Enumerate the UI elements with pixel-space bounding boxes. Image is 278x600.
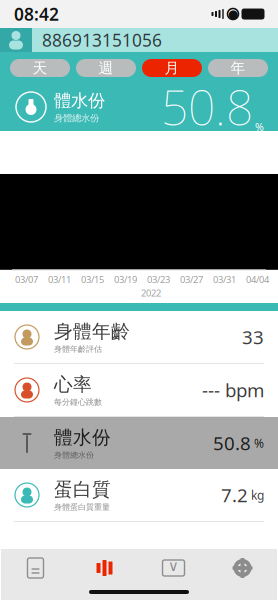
staticText: 03/07 [15, 273, 38, 286]
staticText: 體水份 [54, 90, 105, 111]
staticText: 03/23 [147, 273, 170, 286]
staticText: 04/04 [246, 273, 269, 286]
staticText: 身體總水份 [54, 112, 99, 124]
staticText: 03/19 [114, 273, 137, 286]
button[interactable]: 蛋白質 [0, 469, 278, 522]
button[interactable]: 月 [142, 59, 202, 77]
staticText: 身體年齡評估 [54, 344, 102, 354]
staticText: % [254, 435, 264, 451]
button[interactable]: Records [1, 549, 70, 587]
staticText: 03/27 [180, 273, 203, 286]
button[interactable]: Charts [70, 549, 139, 587]
button[interactable]: 年 [208, 59, 268, 77]
button[interactable]: 天 [10, 59, 70, 77]
staticText: 週 [98, 59, 113, 77]
button[interactable]: 身體年齡 [0, 311, 278, 364]
staticText: 年 [230, 59, 245, 77]
staticText: 7.2 [221, 483, 248, 507]
staticText: 08:42 [14, 2, 59, 25]
button[interactable]: 心率 [0, 364, 278, 417]
staticText: 33 [242, 325, 264, 349]
staticText: 每分鐘心跳數 [54, 397, 102, 407]
button[interactable]: 體水份 [0, 417, 278, 469]
staticText: 2022 [141, 287, 161, 299]
button[interactable]: Messages [139, 549, 208, 587]
staticText: 886913151056 [42, 28, 162, 51]
staticText: 體水份 [54, 426, 111, 449]
staticText: ∨ [168, 558, 179, 574]
staticText: --- bpm [202, 378, 264, 402]
staticText: ● [228, 7, 238, 21]
staticText: 03/15 [81, 273, 104, 286]
staticText: 50.8 [161, 75, 253, 139]
staticText: 03/31 [213, 273, 236, 286]
staticText: 身體蛋白質重量 [54, 502, 110, 512]
staticText: % [255, 120, 264, 134]
staticText: 03/11 [48, 273, 71, 286]
staticText: 蛋白質 [54, 478, 111, 501]
button[interactable]: Settings [208, 549, 277, 587]
staticText: 天 [32, 59, 47, 77]
button[interactable]: 週 [76, 59, 136, 77]
staticText: kg [251, 487, 264, 503]
staticText: 心率 [54, 373, 92, 396]
button[interactable]: Account 886913151056 [0, 28, 278, 52]
staticText: 身體總水份 [54, 450, 94, 460]
staticText: 50.8 [213, 431, 251, 455]
staticText: 月 [164, 59, 179, 77]
staticText: 身體年齡 [54, 320, 130, 343]
